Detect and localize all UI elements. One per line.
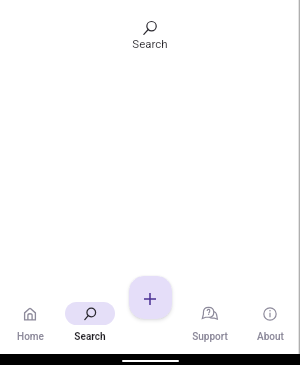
button[interactable]: Support <box>180 294 240 343</box>
button[interactable]: About <box>240 294 300 343</box>
button[interactable]: Add <box>129 276 172 319</box>
button[interactable]: Home <box>0 294 60 343</box>
staticText: Support <box>192 331 228 343</box>
staticText: Search <box>74 331 106 343</box>
staticText: Search <box>132 37 168 50</box>
button[interactable]: Search <box>60 294 120 343</box>
staticText: About <box>257 331 284 343</box>
staticText: Home <box>17 331 44 343</box>
